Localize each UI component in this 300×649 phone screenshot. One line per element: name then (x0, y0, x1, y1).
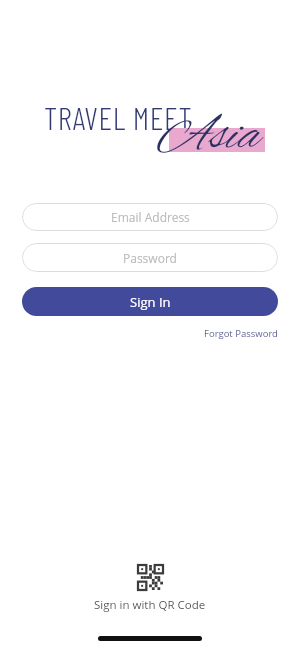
staticText: Password (123, 250, 177, 266)
staticText: TRAVEL MEET (44, 98, 193, 136)
staticText: Asia (157, 106, 258, 169)
staticText: Sign In (130, 293, 171, 311)
button[interactable]: Email Address (22, 203, 278, 231)
staticText: Sign in with QR Code (94, 597, 206, 613)
staticText: Email Address (111, 209, 190, 225)
button[interactable]: Forgot Password (204, 327, 278, 340)
button[interactable]: Sign In (22, 287, 278, 316)
button[interactable]: Password (22, 243, 278, 272)
button[interactable]: Sign in with QR Code (0, 565, 300, 613)
